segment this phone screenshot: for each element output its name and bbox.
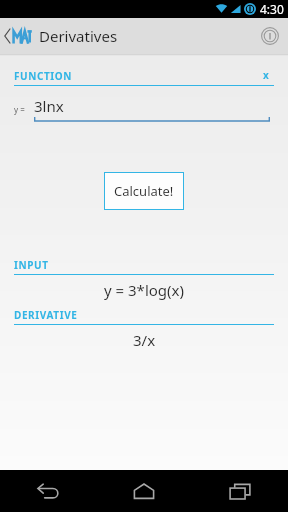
button[interactable]: 3lnx	[34, 96, 270, 122]
staticText: FUNCTION	[14, 69, 73, 83]
staticText: 3/x	[133, 330, 156, 350]
staticText: INPUT	[14, 258, 49, 272]
staticText: y = 3*log(x)	[104, 280, 184, 300]
staticText: 4:30	[260, 1, 284, 17]
button[interactable]: Info	[252, 18, 288, 54]
staticText: 3lnx	[34, 96, 64, 116]
staticText: y =	[14, 104, 25, 115]
button[interactable]: Clear function	[258, 67, 274, 83]
staticText: Calculate!	[114, 182, 174, 200]
button[interactable]: Back	[0, 470, 96, 512]
staticText: Derivatives	[39, 26, 118, 46]
staticText: x	[263, 68, 269, 82]
button[interactable]: Recent apps	[192, 470, 288, 512]
button[interactable]: Home	[96, 470, 192, 512]
button[interactable]: Derivatives	[0, 18, 126, 54]
button[interactable]: Calculate!	[104, 172, 184, 210]
staticText: DERIVATIVE	[14, 308, 78, 322]
